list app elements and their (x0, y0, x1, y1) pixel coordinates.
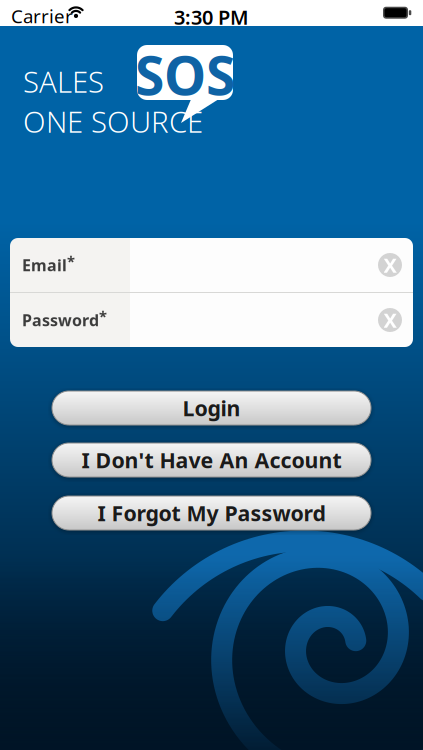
staticText: X (383, 252, 396, 278)
staticText: I Don't Have An Account (81, 446, 341, 474)
button[interactable]: I Forgot My Password (52, 496, 371, 530)
staticText: Login (182, 394, 240, 422)
button[interactable]: Password text field (130, 293, 413, 347)
button[interactable]: Clear text (378, 307, 402, 333)
staticText: SOS (135, 39, 235, 110)
staticText: Email (22, 254, 67, 276)
staticText: ONE SOURCE (23, 102, 203, 141)
staticText: Carrier (11, 4, 73, 28)
staticText: X (383, 307, 396, 333)
staticText: SALES (23, 62, 104, 101)
staticText: Password (22, 309, 99, 331)
staticText: 3:30 PM (174, 4, 249, 30)
button[interactable]: Clear text (378, 252, 402, 278)
button[interactable]: Login (52, 391, 371, 425)
staticText: * (99, 306, 107, 326)
button[interactable]: I Don't Have An Account (52, 443, 371, 477)
staticText: * (67, 251, 75, 271)
staticText: I Forgot My Password (97, 499, 325, 527)
button[interactable]: Email text field (130, 238, 413, 292)
